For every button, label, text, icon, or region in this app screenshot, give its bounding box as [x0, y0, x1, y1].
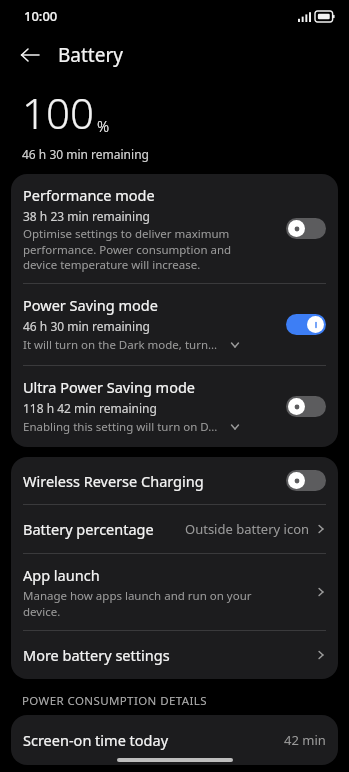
button[interactable]: Toggle on	[286, 314, 326, 335]
button[interactable]: Expand	[226, 336, 244, 354]
staticText: App launch	[23, 565, 100, 585]
button[interactable]: Wireless Reverse Charging	[11, 457, 338, 504]
staticText: 46 h 30 min remaining	[22, 146, 149, 162]
staticText: It will turn on the Dark mode, turn…	[23, 337, 218, 353]
staticText: Battery	[58, 42, 123, 68]
staticText: Wireless Reverse Charging	[23, 471, 286, 491]
button[interactable]: Power Saving mode	[11, 284, 338, 365]
button[interactable]: Back	[12, 37, 48, 73]
staticText: 10:00	[24, 7, 58, 25]
staticText: POWER CONSUMPTION DETAILS	[22, 693, 207, 709]
button[interactable]: Toggle off	[286, 470, 326, 491]
staticText: Manage how apps launch and run on your d…	[23, 588, 252, 619]
staticText: More battery settings	[23, 645, 314, 665]
staticText: Outside battery icon	[185, 520, 310, 538]
button[interactable]: Expand	[226, 418, 244, 436]
staticText: Performance mode	[23, 185, 155, 205]
button[interactable]: More battery settings	[11, 631, 338, 679]
staticText: Optimise settings to deliver maximum per…	[23, 226, 232, 272]
staticText: Ultra Power Saving mode	[23, 377, 196, 397]
staticText: 118 h 42 min remaining	[23, 400, 157, 416]
staticText: 46 h 30 min remaining	[23, 318, 150, 334]
staticText: %	[97, 116, 110, 136]
staticText: Enabling this setting will turn on D…	[23, 419, 218, 435]
staticText: 42 min	[284, 731, 326, 749]
staticText: Power Saving mode	[23, 295, 158, 315]
button[interactable]: Toggle off	[286, 396, 326, 417]
button[interactable]: Performance mode	[11, 174, 338, 283]
staticText: Screen-on time today	[23, 730, 284, 750]
button[interactable]: Screen-on time today	[11, 715, 338, 765]
button[interactable]: Ultra Power Saving mode	[11, 366, 338, 447]
staticText: 100	[22, 84, 94, 141]
button[interactable]: App launch	[11, 554, 338, 630]
staticText: 38 h 23 min remaining	[23, 208, 150, 224]
staticText: Battery percentage	[23, 519, 185, 539]
button[interactable]: Battery percentage	[11, 505, 338, 553]
button[interactable]: Toggle off	[286, 218, 326, 239]
